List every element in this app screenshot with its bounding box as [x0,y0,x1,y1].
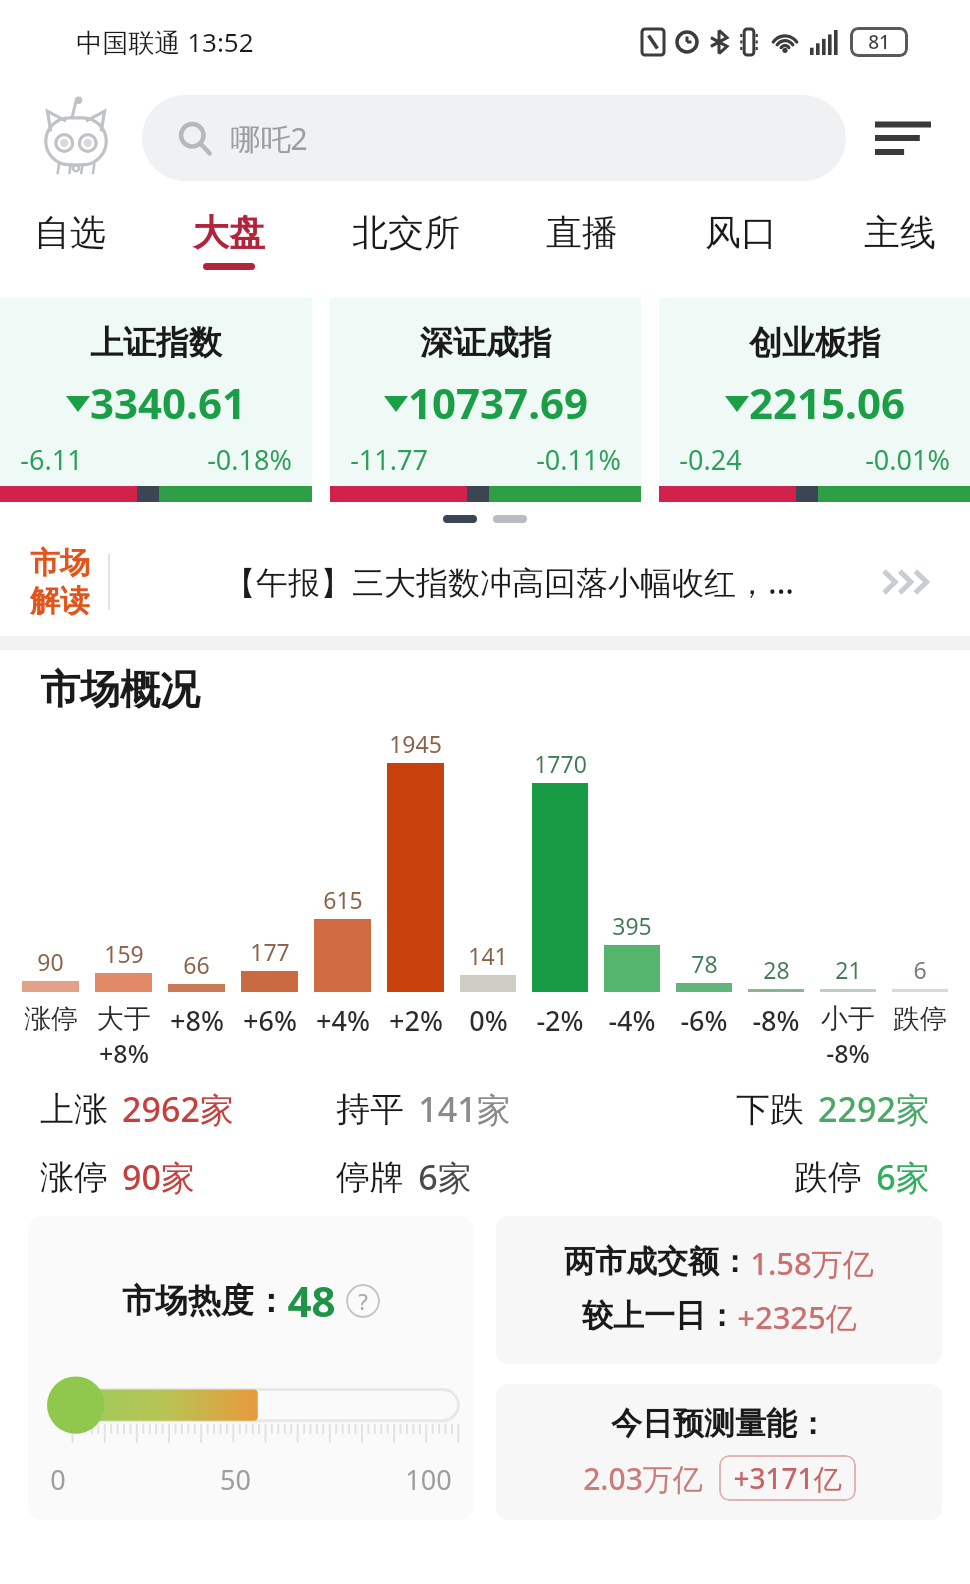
staticText: -0.11% [536,441,621,478]
staticText: 解读 [30,582,90,620]
staticText: 90家 [122,1154,195,1200]
staticText: 21 [835,954,862,985]
staticText: 跌停 [794,1156,862,1199]
staticText: 涨停 [40,1156,108,1199]
staticText: 北交所 [352,210,460,255]
staticText: 78 [691,948,718,979]
staticText: 市场热度： [122,1280,287,1322]
staticText: -11.77 [350,441,428,478]
button[interactable]: 风口 [697,206,785,274]
staticText: 90 [37,946,64,977]
button[interactable]: 创业板指 [659,298,970,502]
staticText: +8% [170,1002,224,1039]
staticText: -8% [826,1036,870,1070]
staticText: -2% [536,1002,584,1039]
staticText: 上涨 [40,1088,108,1131]
staticText: 上证指数 [90,322,222,364]
staticText: 50 [220,1461,251,1498]
button[interactable]: 主线 [856,206,944,274]
staticText: +6% [243,1002,297,1039]
staticText: 深证成指 [420,322,552,364]
staticText: 涨停 [24,1002,78,1036]
staticText: -8% [752,1002,800,1039]
button[interactable]: Help [346,1284,380,1318]
staticText: 1945 [389,728,442,759]
staticText: 停牌 [336,1156,404,1199]
staticText: 6家 [418,1154,472,1200]
staticText: 哪吒2 [230,118,308,159]
staticText: 10737.69 [408,374,588,431]
staticText: 市场概况 [40,664,200,714]
staticText: 159 [104,938,144,969]
staticText: 2962家 [122,1086,234,1132]
staticText: 100 [405,1461,452,1498]
staticText: 小于 [821,1002,875,1036]
staticText: 风口 [705,210,777,255]
staticText: 中国联通 13:52 [76,24,254,60]
staticText: 48 [287,1272,336,1329]
button[interactable]: Menu [868,103,938,173]
staticText: 大盘 [193,210,265,255]
staticText: +2% [389,1002,443,1039]
staticText: 0 [50,1461,66,1498]
staticText: 2.03万亿 [583,1458,703,1499]
staticText: +2325亿 [737,1296,857,1338]
staticText: 66 [183,949,210,980]
button[interactable]: 市场热度： [28,1216,474,1520]
button[interactable]: 市场 [0,536,970,628]
staticText: 6 [913,954,927,985]
staticText: 28 [763,954,790,985]
staticText: 177 [250,936,290,967]
staticText: -6.11 [20,441,83,478]
staticText: -6% [680,1002,728,1039]
button[interactable]: Profile avatar [32,94,120,182]
button[interactable]: 深证成指 [330,298,641,502]
staticText: ? [358,1286,368,1316]
button[interactable]: 今日预测量能： [496,1384,942,1520]
staticText: -0.01% [865,441,950,478]
staticText: -0.18% [207,441,292,478]
staticText: +3171亿 [733,1459,842,1497]
staticText: 今日预测量能： [611,1404,828,1443]
staticText: 跌停 [893,1002,947,1036]
staticText: 创业板指 [749,322,881,364]
button[interactable]: 哪吒2 [142,95,846,181]
staticText: 6家 [876,1154,930,1200]
staticText: 下跌 [736,1088,804,1131]
button[interactable]: 上证指数 [0,298,312,502]
staticText: -0.24 [679,441,742,478]
staticText: +4% [316,1002,370,1039]
staticText: 持平 [336,1088,404,1131]
staticText: 较上一日： [582,1296,737,1335]
button[interactable]: 直播 [538,206,626,274]
staticText: 直播 [546,210,618,255]
staticText: 大于 [97,1002,151,1036]
staticText: 1.58万亿 [750,1242,874,1284]
staticText: 81 [868,29,890,55]
staticText: 3340.61 [90,374,246,431]
staticText: +8% [99,1036,149,1070]
button[interactable]: 大盘 [185,206,273,274]
staticText: 615 [323,884,363,915]
staticText: 141 [468,940,508,971]
staticText: 1770 [534,748,587,779]
button[interactable]: 北交所 [344,206,468,274]
button[interactable]: 自选 [26,206,114,274]
staticText: 主线 [864,210,936,255]
staticText: 395 [612,910,652,941]
staticText: 2292家 [818,1086,930,1132]
staticText: 141家 [418,1086,511,1132]
staticText: 两市成交额： [564,1242,750,1281]
staticText: 【午报】三大指数冲高回落小幅收红，... [134,560,884,604]
staticText: 市场 [30,544,90,582]
staticText: 2215.06 [749,374,905,431]
staticText: 自选 [34,210,106,255]
staticText: -4% [608,1002,656,1039]
staticText: 0% [469,1002,508,1039]
button[interactable]: 两市成交额： [496,1216,942,1364]
